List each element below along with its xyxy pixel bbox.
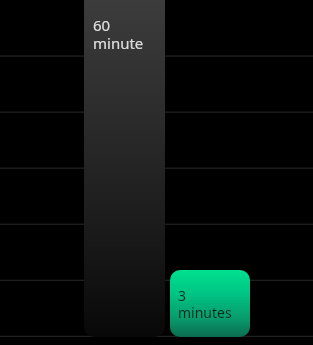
button[interactable]: 3 minutes bar [0,0,313,345]
button[interactable]: 60 minute bar [0,0,313,345]
